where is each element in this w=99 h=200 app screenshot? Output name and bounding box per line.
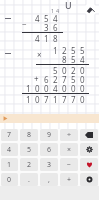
button[interactable]: GEAR <box>80 143 98 156</box>
staticText: 7 <box>62 74 67 85</box>
button[interactable]: × <box>60 143 78 156</box>
staticText: 2 <box>71 65 76 76</box>
staticText: U <box>65 0 72 11</box>
staticText: 7 <box>7 130 12 140</box>
staticText: 5 <box>44 13 49 24</box>
staticText: 5 <box>53 65 58 76</box>
staticText: − <box>22 18 27 29</box>
staticText: 1 <box>7 160 12 170</box>
staticText: 0 <box>35 83 40 94</box>
staticText: 5 <box>71 45 76 56</box>
staticText: 2 <box>27 160 32 170</box>
button[interactable]: ÷ <box>60 129 78 141</box>
staticText: 4 <box>53 13 58 24</box>
staticText: 4 <box>7 145 12 155</box>
button[interactable]: 8 <box>20 129 38 141</box>
staticText: 1 <box>44 33 49 44</box>
button[interactable]: 7 <box>1 129 18 141</box>
button[interactable]: Eraser tool <box>84 3 97 16</box>
button[interactable]: + <box>60 173 78 186</box>
staticText: 7 <box>62 94 67 105</box>
staticText: 4 <box>80 54 85 65</box>
button[interactable]: 1 <box>1 158 18 171</box>
button[interactable]: BK <box>80 129 98 141</box>
staticText: 1 <box>53 45 58 56</box>
staticText: 8 <box>27 130 32 140</box>
staticText: 6 <box>53 22 58 33</box>
staticText: 5 <box>27 145 32 155</box>
staticText: 0 <box>44 83 49 94</box>
staticText: 5 <box>71 54 76 65</box>
staticText: + <box>34 73 39 84</box>
button[interactable]: Expand history <box>0 114 99 123</box>
staticText: , <box>48 175 50 185</box>
staticText: 0 <box>80 65 85 76</box>
staticText: 4 <box>35 13 40 24</box>
staticText: 1 <box>26 83 31 94</box>
button[interactable]: 4 <box>1 143 18 156</box>
button[interactable]: 2 <box>20 158 38 171</box>
staticText: ÷ <box>67 130 72 140</box>
staticText: 8 <box>53 33 58 44</box>
staticText: 8 <box>62 54 67 65</box>
staticText: × <box>67 145 72 155</box>
staticText: 6 <box>47 145 52 155</box>
button[interactable]: EQ <box>80 173 98 186</box>
staticText: 0 <box>80 83 85 94</box>
staticText: 5 <box>71 74 76 85</box>
staticText: 3 <box>44 22 49 33</box>
staticText: 7 <box>44 94 49 105</box>
staticText: 4 <box>56 7 60 14</box>
staticText: 4 <box>35 33 40 44</box>
staticText: . <box>28 175 30 185</box>
staticText: 0 <box>71 83 76 94</box>
button[interactable]: . <box>20 173 38 186</box>
staticText: 1 <box>53 94 58 105</box>
staticText: 0 <box>62 83 67 94</box>
button[interactable]: HEART <box>80 158 98 171</box>
staticText: + <box>67 175 72 185</box>
staticText: 7 <box>71 94 76 105</box>
staticText: 0 <box>35 94 40 105</box>
staticText: 4 <box>53 83 58 94</box>
button[interactable]: 0 <box>1 173 18 186</box>
staticText: 5 <box>80 45 85 56</box>
staticText: 6 <box>44 74 49 85</box>
staticText: 2 <box>53 74 58 85</box>
button[interactable]: , <box>40 173 58 186</box>
button[interactable]: 5 <box>20 143 38 156</box>
staticText: − <box>67 160 72 170</box>
staticText: 3 <box>47 160 52 170</box>
staticText: 0 <box>80 74 85 85</box>
staticText: 0 <box>7 175 12 185</box>
staticText: 1 <box>26 94 31 105</box>
button[interactable]: 3 <box>40 158 58 171</box>
staticText: 2 <box>62 45 67 56</box>
button[interactable]: 9 <box>40 129 58 141</box>
staticText: 0 <box>62 65 67 76</box>
staticText: × <box>37 49 42 60</box>
button[interactable]: 6 <box>40 143 58 156</box>
staticText: 0 <box>80 94 85 105</box>
button[interactable]: − <box>60 158 78 171</box>
staticText: 1 <box>51 7 55 14</box>
staticText: 9 <box>47 130 52 140</box>
